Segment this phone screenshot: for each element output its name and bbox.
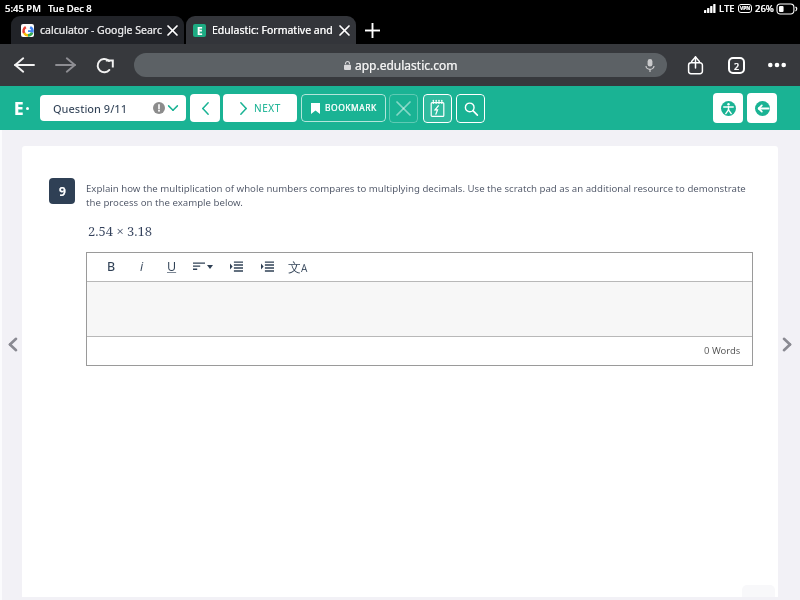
button[interactable]: Previous — [190, 94, 220, 122]
staticText: E — [14, 97, 24, 120]
staticText: 9 — [59, 183, 66, 199]
staticText: VPN — [740, 5, 751, 12]
button[interactable]: Previous question — [4, 335, 22, 353]
staticText: NEXT — [254, 101, 281, 115]
button[interactable]: Tabs — [722, 44, 750, 86]
button[interactable]: Bold — [100, 252, 122, 281]
staticText: B — [107, 258, 116, 275]
button[interactable]: Voice search — [642, 57, 658, 73]
button[interactable]: NEXT — [223, 94, 297, 122]
button[interactable]: More — [763, 44, 791, 86]
staticText: Question 9/11 — [53, 101, 127, 116]
button[interactable]: Share — [681, 44, 709, 86]
staticText: 5:45 PM — [5, 2, 41, 15]
staticText: 2 — [734, 60, 740, 72]
button[interactable]: New tab — [360, 16, 384, 44]
button[interactable]: Translate — [287, 252, 309, 281]
button[interactable]: app.edulastic.com — [134, 53, 667, 77]
staticText: Tue Dec 8 — [48, 2, 92, 15]
staticText: A — [301, 261, 308, 275]
button[interactable]: Close tab — [335, 21, 353, 39]
button[interactable]: Close tab — [163, 21, 181, 39]
staticText: Edulastic: Formative and — [212, 23, 348, 37]
staticText: 26% — [755, 2, 774, 15]
button[interactable]: Zoom — [456, 94, 485, 123]
staticText: i — [140, 258, 144, 275]
button[interactable]: Align — [192, 252, 214, 281]
button[interactable]: Italic — [131, 252, 153, 281]
staticText: E — [197, 24, 203, 37]
staticText: app.edulastic.com — [355, 57, 458, 73]
button[interactable]: Underline — [161, 252, 183, 281]
staticText: BOOKMARK — [325, 102, 377, 114]
button[interactable]: Scratch pad — [423, 94, 452, 123]
staticText: 文 — [288, 259, 301, 275]
button[interactable]: E — [186, 16, 356, 44]
button[interactable]: Forward — [52, 44, 80, 86]
button[interactable]: Decrease indent — [256, 252, 278, 281]
button[interactable]: Question 9/11 — [40, 95, 186, 121]
staticText: U — [167, 258, 177, 275]
button[interactable]: BOOKMARK — [301, 94, 386, 122]
staticText: LTE — [719, 2, 735, 15]
staticText: Explain how the multiplication of whole … — [86, 182, 746, 208]
button[interactable]: Back — [10, 44, 38, 86]
button[interactable]: calculator - Google Searc — [11, 16, 184, 44]
button[interactable]: Accessibility — [713, 93, 743, 123]
staticText: 2.54 × 3.18 — [88, 222, 153, 240]
button[interactable]: Clear response — [389, 94, 418, 123]
staticText: calculator - Google Searc — [40, 23, 176, 37]
button[interactable]: Exit test — [747, 93, 777, 123]
button[interactable]: Increase indent — [225, 252, 247, 281]
staticText: 0 Words — [704, 344, 741, 357]
button[interactable]: Reload — [91, 44, 119, 86]
button[interactable]: Next question — [778, 335, 796, 353]
